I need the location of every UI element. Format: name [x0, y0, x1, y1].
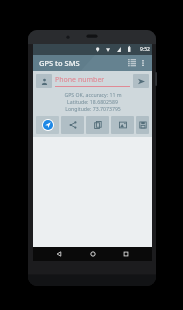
button[interactable]: Home — [86, 247, 100, 261]
button[interactable]: More options — [137, 57, 149, 69]
staticText: Phone number — [55, 75, 105, 85]
staticText: Latitude: 18.6802589 — [67, 98, 118, 105]
button[interactable]: Locate — [36, 116, 59, 134]
button[interactable]: List — [126, 57, 138, 69]
button[interactable]: Recent apps — [119, 247, 133, 261]
button[interactable]: Show on map — [111, 116, 134, 134]
staticText: GPS OK, accuracy: 11 m — [64, 91, 122, 98]
button[interactable]: Send SMS — [133, 74, 149, 88]
button[interactable]: Back — [52, 247, 66, 261]
button[interactable]: Copy — [86, 116, 109, 134]
staticText: Longitude: 73.7073795 — [65, 105, 121, 112]
staticText: GPS to SMS — [39, 58, 80, 68]
button[interactable]: Share — [61, 116, 84, 134]
button[interactable]: Save — [136, 116, 149, 134]
button[interactable]: Phone number — [55, 75, 130, 87]
button[interactable]: Pick contact — [36, 74, 52, 88]
staticText: 9:52 — [140, 46, 150, 53]
